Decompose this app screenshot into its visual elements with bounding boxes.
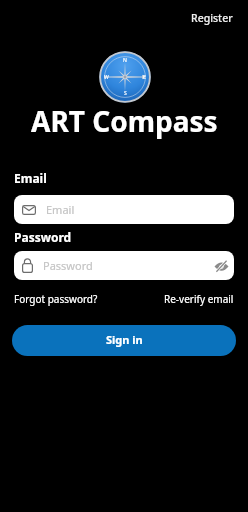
staticText: Email (46, 202, 75, 217)
staticText: Password (43, 258, 93, 273)
button[interactable]: Register (191, 11, 233, 25)
staticText: E (143, 74, 146, 81)
staticText: Email (14, 170, 47, 186)
staticText: Forgot password? (14, 292, 98, 306)
staticText: Re-verify email (164, 292, 234, 306)
button[interactable]: Forgot password? (14, 292, 98, 306)
staticText: N (123, 57, 127, 64)
staticText: S (124, 90, 127, 97)
staticText: Password (14, 229, 72, 245)
button[interactable]: Re-verify email (164, 292, 234, 306)
staticText: W (104, 74, 109, 81)
button[interactable]: Sign in (12, 325, 236, 356)
staticText: Sign in (106, 332, 143, 347)
button[interactable]: Password (14, 251, 234, 280)
staticText: Register (191, 11, 233, 25)
staticText: ART Compass (31, 102, 218, 140)
button[interactable]: Email (14, 195, 234, 224)
